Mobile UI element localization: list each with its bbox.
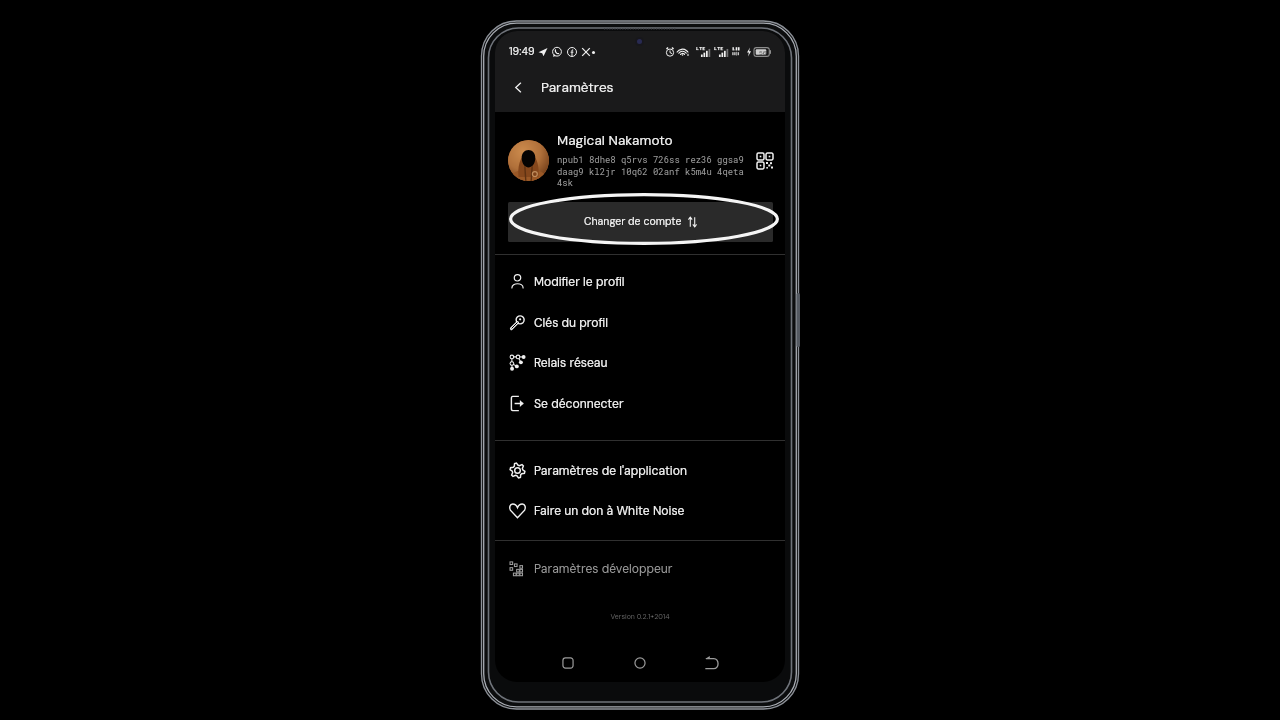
staticText: npub1 8dhe8 q5rvs 726ss rez36 ggsa9 daag… <box>557 154 747 188</box>
staticText: Faire un don à White Noise <box>534 503 685 519</box>
button[interactable]: Paramètres de l'application <box>495 451 785 491</box>
staticText: Magical Nakamoto <box>557 132 673 150</box>
button[interactable]: Modifier le profil <box>495 262 785 302</box>
staticText: 56 <box>759 49 767 57</box>
button[interactable]: Relais réseau <box>495 343 785 383</box>
staticText: Clés du profil <box>534 315 608 331</box>
staticText: Paramètres développeur <box>534 561 673 577</box>
staticText: Relais réseau <box>534 355 608 371</box>
button[interactable]: Clés du profil <box>495 303 785 343</box>
staticText: Paramètres <box>541 79 614 97</box>
button[interactable]: Home <box>629 652 651 674</box>
button[interactable]: Faire un don à White Noise <box>495 491 785 531</box>
button[interactable]: Recents <box>557 652 579 674</box>
button[interactable]: Back <box>701 652 723 674</box>
button[interactable]: Back <box>508 77 529 98</box>
staticText: Changer de compte <box>584 215 682 229</box>
staticText: 19:49 <box>509 44 535 58</box>
staticText: Modifier le profil <box>534 274 625 290</box>
button[interactable]: Se déconnecter <box>495 384 785 424</box>
staticText: Version 0.2.1+2014 <box>495 612 785 621</box>
staticText: Paramètres de l'application <box>534 463 687 479</box>
staticText: Se déconnecter <box>534 396 624 412</box>
button[interactable]: Paramètres développeur <box>495 549 785 589</box>
button[interactable]: Changer de compte <box>508 202 773 242</box>
button[interactable]: Show QR code <box>757 153 773 169</box>
